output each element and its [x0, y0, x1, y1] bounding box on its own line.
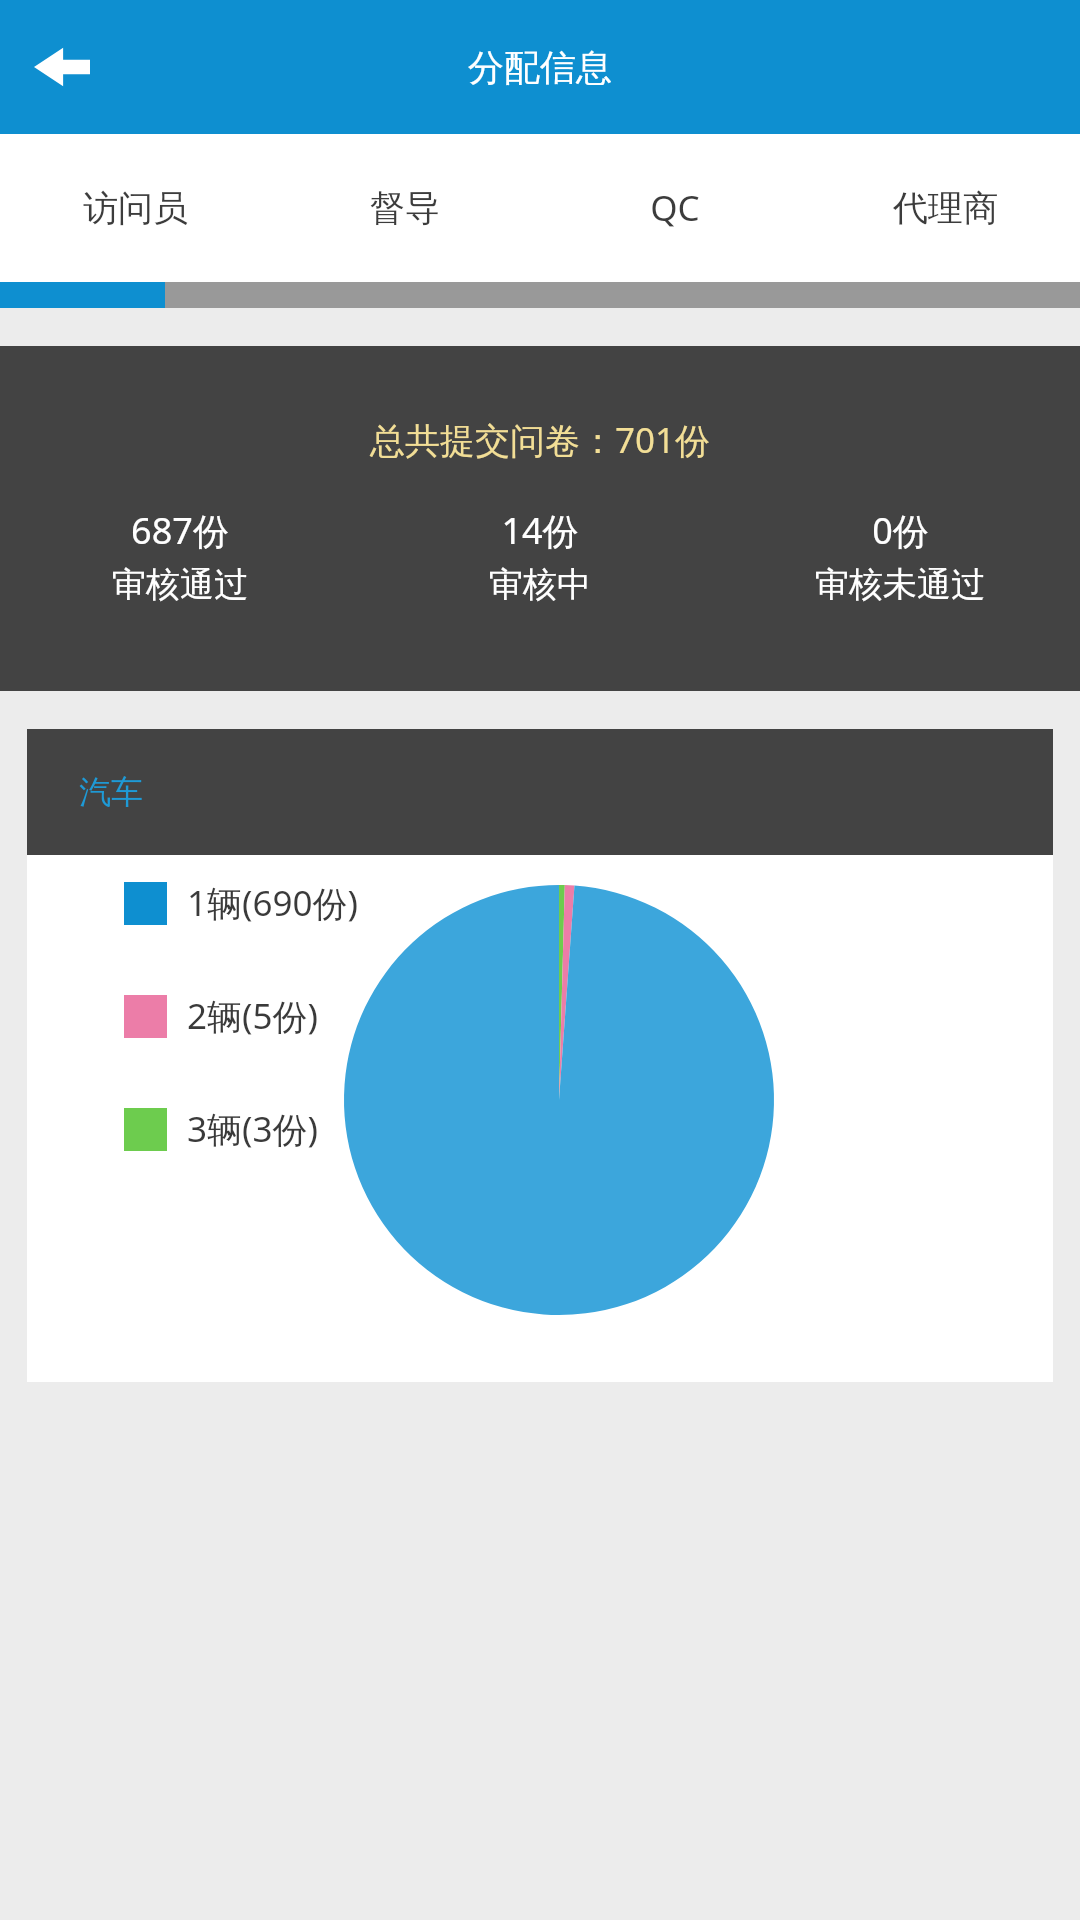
staticText: 汽车	[79, 772, 143, 812]
staticText: 审核中	[489, 563, 591, 606]
button[interactable]: 访问员	[0, 134, 270, 282]
button[interactable]: 687份	[0, 506, 360, 606]
staticText: 0份	[872, 506, 929, 555]
button[interactable]: QC	[540, 134, 810, 282]
staticText: 分配信息	[468, 45, 612, 90]
button[interactable]: 汽车	[27, 729, 1053, 1382]
staticText: 督导	[370, 186, 440, 230]
staticText: QC	[650, 184, 700, 232]
button[interactable]: 督导	[270, 134, 540, 282]
staticText: 2辆(5份)	[187, 992, 319, 1040]
button[interactable]: Back	[14, 19, 110, 115]
staticText: 3辆(3份)	[187, 1105, 319, 1153]
button[interactable]: 0份	[720, 506, 1080, 606]
button[interactable]: 代理商	[810, 134, 1080, 282]
staticText: 14份	[501, 506, 579, 555]
staticText: 代理商	[893, 186, 998, 230]
staticText: 访问员	[83, 186, 188, 230]
staticText: 总共提交问卷：701份	[0, 416, 1080, 464]
staticText: 1辆(690份)	[187, 879, 359, 927]
button[interactable]: 14份	[360, 506, 720, 606]
staticText: 687份	[131, 506, 229, 555]
staticText: 审核通过	[112, 563, 248, 606]
staticText: 审核未通过	[815, 563, 985, 606]
